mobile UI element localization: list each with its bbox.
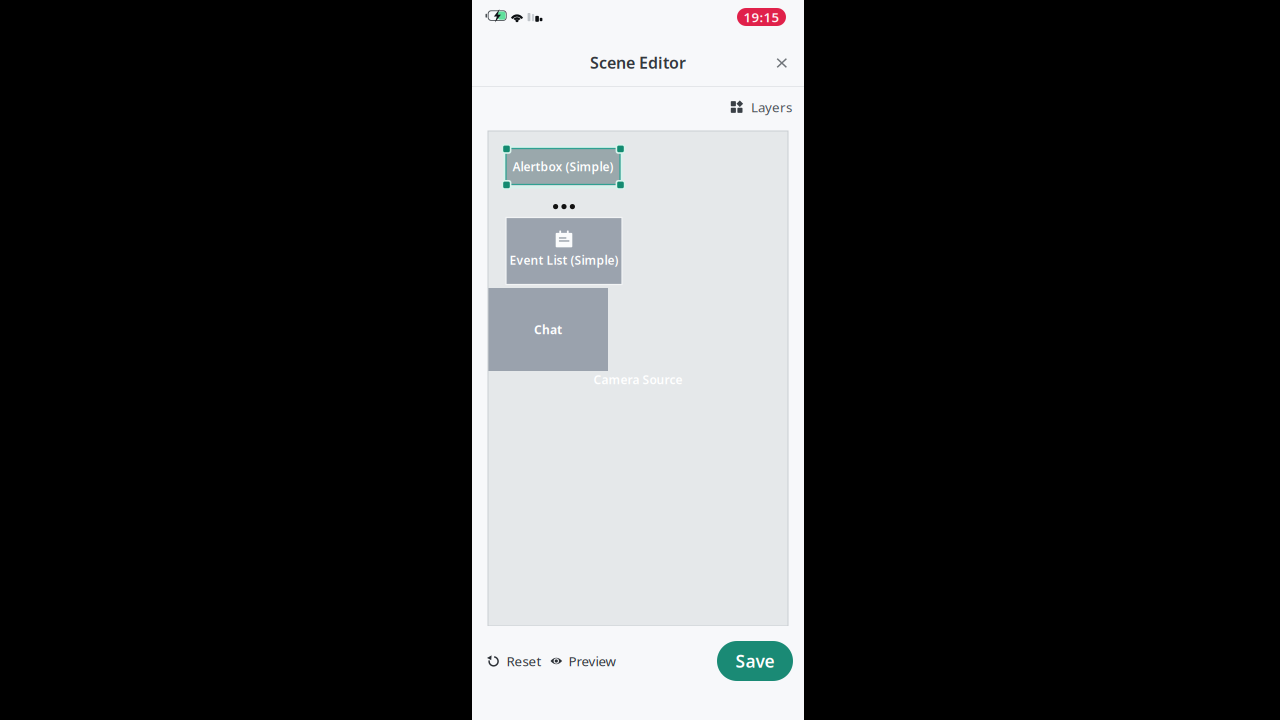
button[interactable]: Alertbox (Simple)	[506, 148, 620, 184]
button[interactable]: Close	[768, 49, 796, 77]
button[interactable]: Save	[717, 641, 793, 681]
button[interactable]: More options	[553, 204, 575, 209]
staticText: Alertbox (Simple)	[512, 158, 613, 174]
staticText: Scene Editor	[590, 52, 686, 73]
staticText: Preview	[569, 652, 616, 670]
button[interactable]: Chat	[488, 288, 608, 371]
button[interactable]: Layers	[726, 92, 797, 126]
staticText: Layers	[751, 98, 792, 116]
staticText: Chat	[534, 321, 562, 337]
button[interactable]: Camera Source	[578, 373, 698, 386]
staticText: Save	[735, 649, 774, 672]
staticText: Event List (Simple)	[509, 252, 618, 268]
staticText: Reset	[506, 652, 541, 670]
staticText: Camera Source	[593, 371, 682, 387]
staticText: 19:15	[743, 8, 779, 26]
button[interactable]: Preview	[548, 643, 618, 679]
button[interactable]: Event List (Simple)	[506, 217, 622, 284]
button[interactable]: Reset	[485, 643, 543, 679]
